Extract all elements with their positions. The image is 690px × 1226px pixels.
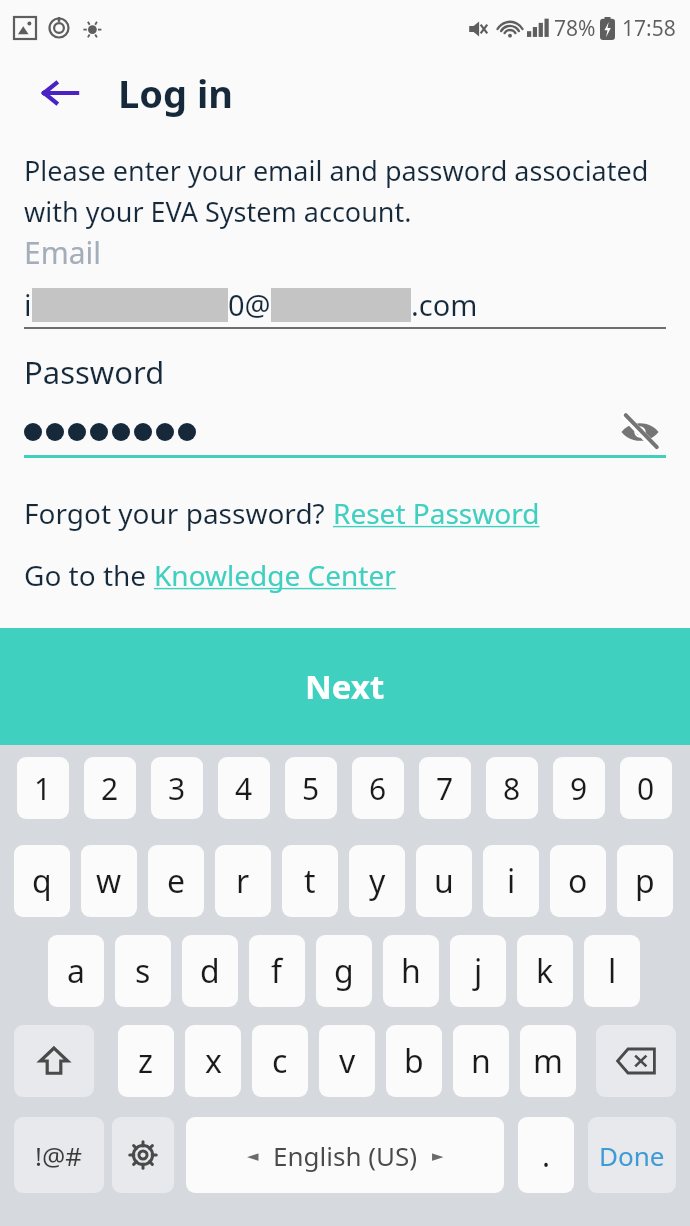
button[interactable]: !@#: [14, 1117, 104, 1193]
staticText: l: [608, 949, 617, 993]
staticText: w: [96, 859, 122, 903]
staticText: c: [272, 1039, 288, 1083]
button[interactable]: q: [14, 845, 70, 917]
staticText: e: [167, 859, 186, 903]
button[interactable]: h: [383, 935, 439, 1007]
button[interactable]: Knowledge Center: [154, 556, 396, 594]
staticText: Next: [305, 664, 385, 709]
button[interactable]: g: [316, 935, 372, 1007]
staticText: x: [205, 1039, 222, 1083]
button[interactable]: c: [252, 1025, 308, 1097]
button[interactable]: 7: [419, 757, 471, 819]
staticText: v: [339, 1039, 356, 1083]
staticText: Go to the: [24, 556, 154, 594]
staticText: 1: [34, 768, 52, 809]
button[interactable]: Next: [0, 628, 690, 745]
staticText: .: [542, 1135, 551, 1176]
staticText: Please enter your email and password ass…: [24, 152, 666, 230]
staticText: b: [404, 1039, 424, 1083]
staticText: Done: [599, 1138, 665, 1173]
button[interactable]: x: [185, 1025, 241, 1097]
staticText: Log in: [118, 67, 233, 119]
staticText: English (US): [273, 1138, 418, 1173]
staticText: s: [135, 949, 151, 993]
button[interactable]: 1: [17, 757, 69, 819]
staticText: j: [474, 949, 483, 993]
staticText: 3: [168, 768, 186, 809]
button[interactable]: p: [617, 845, 673, 917]
button[interactable]: y: [349, 845, 405, 917]
staticText: 7: [436, 768, 454, 809]
staticText: a: [67, 949, 85, 993]
button[interactable]: d: [182, 935, 238, 1007]
staticText: n: [471, 1039, 491, 1083]
staticText: i: [24, 285, 32, 324]
staticText: r: [236, 859, 250, 903]
button[interactable]: v: [319, 1025, 375, 1097]
button[interactable]: Reset Password: [333, 494, 540, 532]
button[interactable]: f: [249, 935, 305, 1007]
button[interactable]: 8: [486, 757, 538, 819]
staticText: .com: [411, 285, 478, 324]
button[interactable]: k: [517, 935, 573, 1007]
staticText: g: [334, 949, 354, 993]
button[interactable]: Shift: [14, 1025, 94, 1097]
button[interactable]: Back: [34, 67, 86, 119]
staticText: y: [369, 859, 386, 903]
staticText: f: [271, 949, 283, 993]
button[interactable]: a: [48, 935, 104, 1007]
button[interactable]: 2: [84, 757, 136, 819]
staticText: Forgot your password?: [24, 494, 333, 532]
button[interactable]: b: [386, 1025, 442, 1097]
button[interactable]: s: [115, 935, 171, 1007]
staticText: m: [533, 1039, 563, 1083]
staticText: Password: [24, 351, 165, 393]
button[interactable]: u: [416, 845, 472, 917]
button[interactable]: l: [584, 935, 640, 1007]
staticText: 2: [101, 768, 119, 809]
button[interactable]: Done: [588, 1117, 676, 1193]
button[interactable]: .: [518, 1117, 574, 1193]
button[interactable]: 5: [285, 757, 337, 819]
button[interactable]: Show password: [614, 409, 666, 455]
staticText: d: [200, 949, 220, 993]
staticText: u: [434, 859, 454, 903]
staticText: 8: [503, 768, 521, 809]
button[interactable]: r: [215, 845, 271, 917]
button[interactable]: t: [282, 845, 338, 917]
staticText: i: [507, 859, 516, 903]
button[interactable]: 3: [151, 757, 203, 819]
button[interactable]: i: [483, 845, 539, 917]
button[interactable]: m: [520, 1025, 576, 1097]
button[interactable]: 4: [218, 757, 270, 819]
staticText: 4: [235, 768, 253, 809]
staticText: ◄: [247, 1147, 259, 1164]
button[interactable]: z: [118, 1025, 174, 1097]
staticText: 78%: [554, 14, 596, 43]
staticText: h: [401, 949, 421, 993]
button[interactable]: 6: [352, 757, 404, 819]
staticText: !@#: [35, 1138, 83, 1173]
staticText: Reset Password: [333, 494, 540, 532]
button[interactable]: Backspace: [596, 1025, 676, 1097]
button[interactable]: Space: [186, 1117, 504, 1193]
staticText: t: [304, 859, 316, 903]
staticText: 0: [637, 768, 655, 809]
staticText: o: [568, 859, 588, 903]
staticText: Email: [24, 232, 102, 273]
button[interactable]: Settings: [112, 1117, 174, 1193]
staticText: 6: [369, 768, 387, 809]
button[interactable]: o: [550, 845, 606, 917]
staticText: ►: [432, 1147, 444, 1164]
button[interactable]: 9: [553, 757, 605, 819]
button[interactable]: w: [81, 845, 137, 917]
button[interactable]: 0: [620, 757, 672, 819]
button[interactable]: n: [453, 1025, 509, 1097]
button[interactable]: j: [450, 935, 506, 1007]
button[interactable]: e: [148, 845, 204, 917]
staticText: 17:58: [622, 14, 676, 43]
staticText: k: [536, 949, 554, 993]
staticText: q: [32, 859, 52, 903]
staticText: Knowledge Center: [154, 556, 396, 594]
staticText: z: [138, 1039, 154, 1083]
